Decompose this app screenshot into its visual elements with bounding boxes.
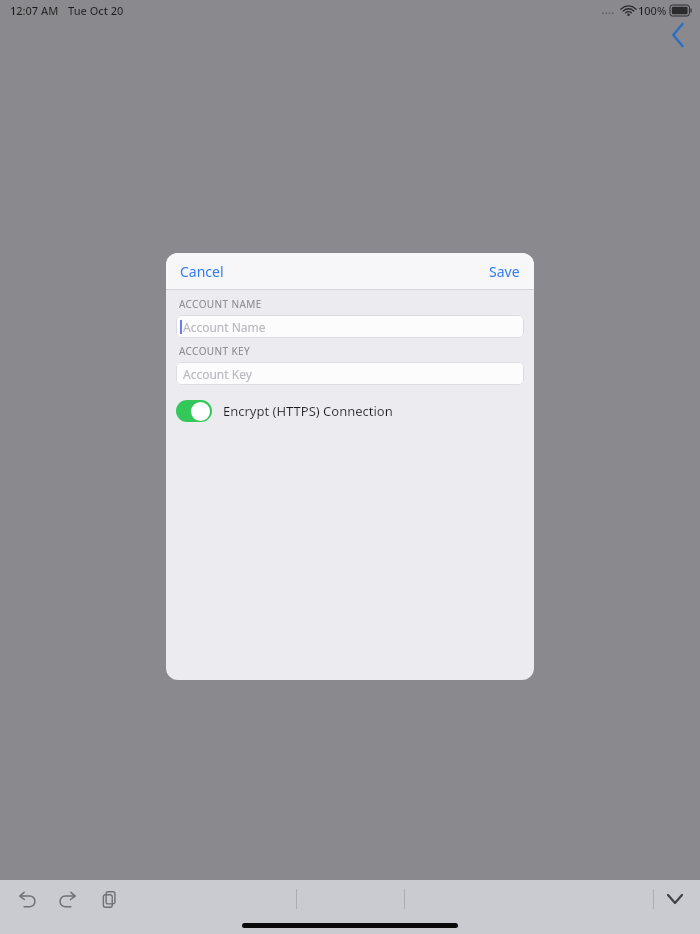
staticText: Account Name: [183, 319, 266, 335]
button[interactable]: Redo: [52, 884, 82, 914]
button[interactable]: Save: [481, 258, 528, 285]
staticText: Tue Oct 20: [68, 3, 124, 18]
button[interactable]: Back: [660, 18, 696, 52]
button[interactable]: Encrypt (HTTPS) Connection: [166, 398, 534, 424]
button[interactable]: Undo: [12, 884, 42, 914]
staticText: 100%: [638, 3, 667, 18]
staticText: ACCOUNT KEY: [179, 344, 251, 358]
staticText: ACCOUNT NAME: [179, 297, 262, 311]
staticText: Save: [489, 262, 520, 281]
staticText: Encrypt (HTTPS) Connection: [223, 402, 393, 420]
button[interactable]: Account Key: [176, 362, 524, 385]
button[interactable]: Hide keyboard: [660, 884, 690, 914]
staticText: Cancel: [180, 262, 224, 281]
button[interactable]: Account Name: [176, 315, 524, 338]
button[interactable]: Cancel: [172, 258, 232, 285]
staticText: Account Key: [183, 366, 252, 382]
button[interactable]: Paste: [94, 884, 124, 914]
staticText: 12:07 AM: [10, 3, 59, 18]
